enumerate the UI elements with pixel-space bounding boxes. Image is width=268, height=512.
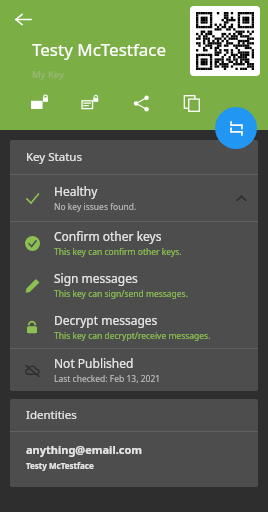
staticText: This key can confirm other keys. <box>54 246 182 258</box>
staticText: My Key <box>32 68 64 81</box>
button[interactable]: Share <box>126 88 156 118</box>
staticText: Decrypt messages <box>54 312 158 328</box>
button[interactable]: Encrypt <box>24 88 54 118</box>
staticText: This key can sign/send messages. <box>54 288 188 300</box>
button[interactable]: Not Published <box>10 349 258 391</box>
staticText: This key can decrypt/receive messages. <box>54 330 211 342</box>
staticText: Key Status <box>26 149 82 165</box>
button[interactable]: Sign messages <box>10 264 258 306</box>
staticText: anything@email.com <box>26 442 143 457</box>
button[interactable]: Sign <box>75 88 105 118</box>
button[interactable]: QR code <box>190 6 260 76</box>
button[interactable]: Decrypt messages <box>10 306 258 348</box>
staticText: Sign messages <box>54 270 138 286</box>
staticText: Testy McTestface <box>32 38 167 61</box>
button[interactable]: Refresh <box>215 107 257 149</box>
staticText: No key issues found. <box>54 201 137 213</box>
button[interactable]: anything@email.com <box>10 432 258 487</box>
button[interactable]: Confirm other keys <box>10 222 258 264</box>
staticText: Last checked: Feb 13, 2021 <box>54 373 161 385</box>
button[interactable]: Healthy <box>10 175 258 221</box>
staticText: Confirm other keys <box>54 228 162 244</box>
staticText: Identities <box>26 407 77 423</box>
button[interactable]: Back <box>6 2 40 36</box>
staticText: Not Published <box>54 355 134 371</box>
button[interactable]: Copy <box>177 88 207 118</box>
staticText: Testy McTestface <box>26 460 94 471</box>
staticText: Healthy <box>54 183 98 199</box>
button[interactable]: More options <box>239 1 265 27</box>
